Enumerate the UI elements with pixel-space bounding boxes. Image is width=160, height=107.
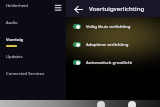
button[interactable]: Adaptieve verlichting (66, 35, 160, 53)
button[interactable]: Automatisch grootlicht (66, 53, 160, 71)
button[interactable]: Back (71, 2, 85, 16)
staticText: Helderheid (6, 3, 28, 9)
button[interactable]: Veilig thuis verlichting (66, 17, 160, 35)
staticText: Connected Services (6, 71, 45, 77)
staticText: Automatisch grootlicht (86, 59, 133, 65)
staticText: Audio (6, 20, 18, 26)
button[interactable]: Audio (0, 19, 66, 36)
staticText: Veilig thuis verlichting (86, 23, 131, 29)
staticText: Voertuigverlichting (89, 5, 145, 13)
button[interactable]: Connected Services (0, 70, 66, 87)
staticText: Adaptieve verlichting (86, 41, 129, 47)
button[interactable]: Helderheid (0, 2, 66, 19)
button[interactable]: Voertuig (0, 36, 66, 53)
staticText: Updates (6, 54, 23, 60)
button[interactable]: Updates (0, 53, 66, 70)
button[interactable]: Menu (53, 3, 63, 13)
staticText: Voertuig (6, 37, 24, 43)
